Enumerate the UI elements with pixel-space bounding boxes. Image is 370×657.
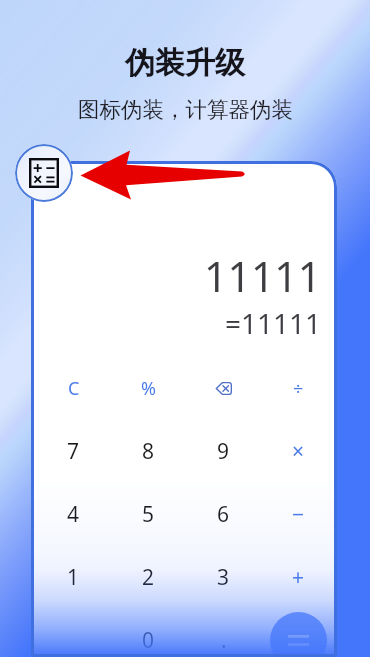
staticText: 6 xyxy=(217,500,230,529)
staticText: × xyxy=(292,437,305,466)
button[interactable]: − xyxy=(261,483,336,546)
button[interactable]: 5 xyxy=(111,483,186,546)
button[interactable] xyxy=(36,609,111,657)
staticText: 9 xyxy=(217,437,230,466)
button[interactable]: ÷ xyxy=(261,357,336,420)
staticText: C xyxy=(68,376,80,401)
staticText: =11111 xyxy=(225,304,322,342)
button[interactable]: Calculator disguise icon xyxy=(15,144,73,202)
button[interactable]: 8 xyxy=(111,420,186,483)
button[interactable]: . xyxy=(186,609,261,657)
staticText: % xyxy=(141,376,156,401)
button[interactable]: 7 xyxy=(36,420,111,483)
button[interactable]: Equals xyxy=(270,612,327,657)
staticText: ÷ xyxy=(293,376,304,401)
button[interactable]: 0 xyxy=(111,609,186,657)
button[interactable]: Backspace xyxy=(186,357,261,420)
staticText: 1 xyxy=(67,563,80,592)
staticText: 11111 xyxy=(204,248,322,304)
staticText: 5 xyxy=(142,500,155,529)
staticText: . xyxy=(221,626,227,655)
staticText: 7 xyxy=(67,437,80,466)
staticText: − xyxy=(292,500,305,529)
button[interactable]: + xyxy=(261,546,336,609)
button[interactable]: 3 xyxy=(186,546,261,609)
staticText: 伪装升级 xyxy=(125,44,245,82)
button[interactable]: 1 xyxy=(36,546,111,609)
button[interactable]: × xyxy=(261,420,336,483)
button[interactable]: % xyxy=(111,357,186,420)
staticText: 2 xyxy=(142,563,155,592)
staticText: + xyxy=(292,563,305,592)
staticText: 3 xyxy=(217,563,230,592)
button[interactable]: 2 xyxy=(111,546,186,609)
staticText: 0 xyxy=(142,626,155,655)
button[interactable]: Equals xyxy=(261,609,336,657)
other: Backspace xyxy=(215,382,232,395)
button[interactable]: 6 xyxy=(186,483,261,546)
button[interactable]: 9 xyxy=(186,420,261,483)
button[interactable]: 4 xyxy=(36,483,111,546)
button[interactable]: C xyxy=(36,357,111,420)
staticText: 图标伪装，计算器伪装 xyxy=(78,96,293,123)
staticText: 8 xyxy=(142,437,155,466)
staticText: 4 xyxy=(67,500,80,529)
